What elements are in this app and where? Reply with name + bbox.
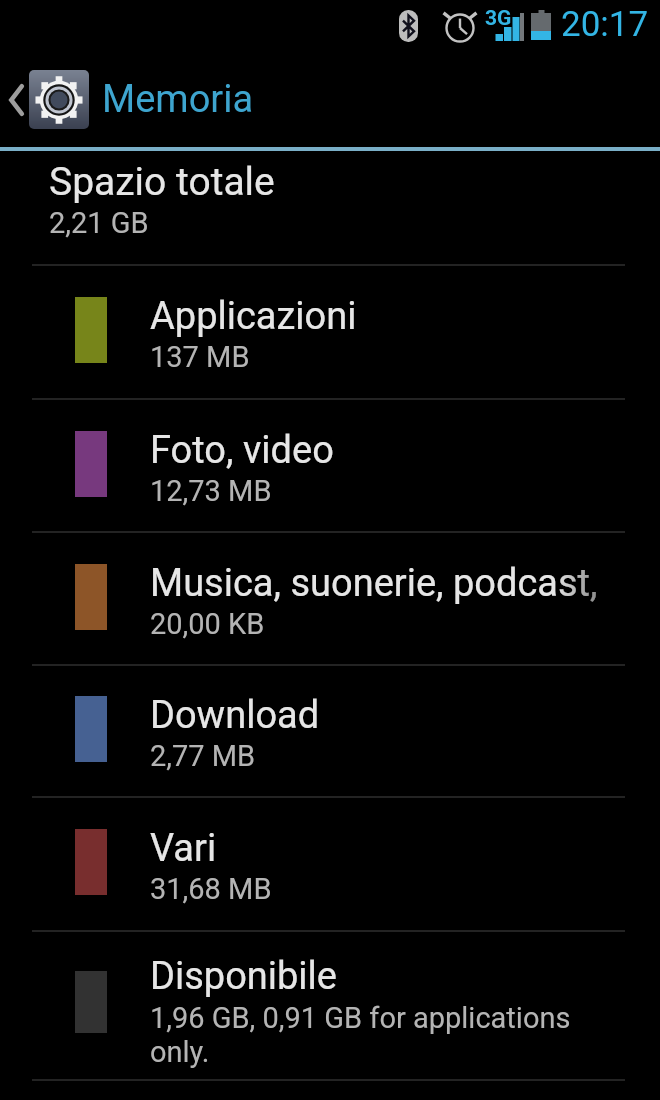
staticText: Spazio totale (49, 159, 275, 205)
staticText: Disponibile (150, 954, 337, 999)
button[interactable]: Musica, suonerie, podcast, (0, 533, 660, 666)
staticText: 1,96 GB, 0,91 GB for applications only. (150, 1001, 582, 1069)
staticText: 12,73 MB (150, 474, 272, 508)
button[interactable]: Applicazioni (0, 266, 660, 400)
staticText: Foto, video (150, 428, 334, 473)
staticText: Memoria (102, 77, 254, 122)
button[interactable]: Foto, video (0, 400, 660, 533)
staticText: Applicazioni (150, 294, 357, 339)
staticText: Vari (150, 826, 217, 871)
staticText: 3G (485, 6, 512, 31)
staticText: 137 MB (150, 340, 250, 374)
button[interactable]: Download (0, 666, 660, 798)
button[interactable]: Disponibile (0, 932, 660, 1081)
staticText: Musica, suonerie, podcast, (150, 561, 598, 606)
button[interactable]: Back (0, 52, 660, 147)
staticText: 20,00 KB (150, 607, 265, 641)
button[interactable]: Vari (0, 798, 660, 932)
staticText: 20:17 (561, 4, 649, 45)
staticText: 31,68 MB (150, 872, 272, 906)
other: Back (9, 84, 23, 116)
staticText: 2,77 MB (150, 739, 256, 773)
staticText: 2,21 GB (49, 206, 149, 240)
staticText: Download (150, 693, 320, 738)
